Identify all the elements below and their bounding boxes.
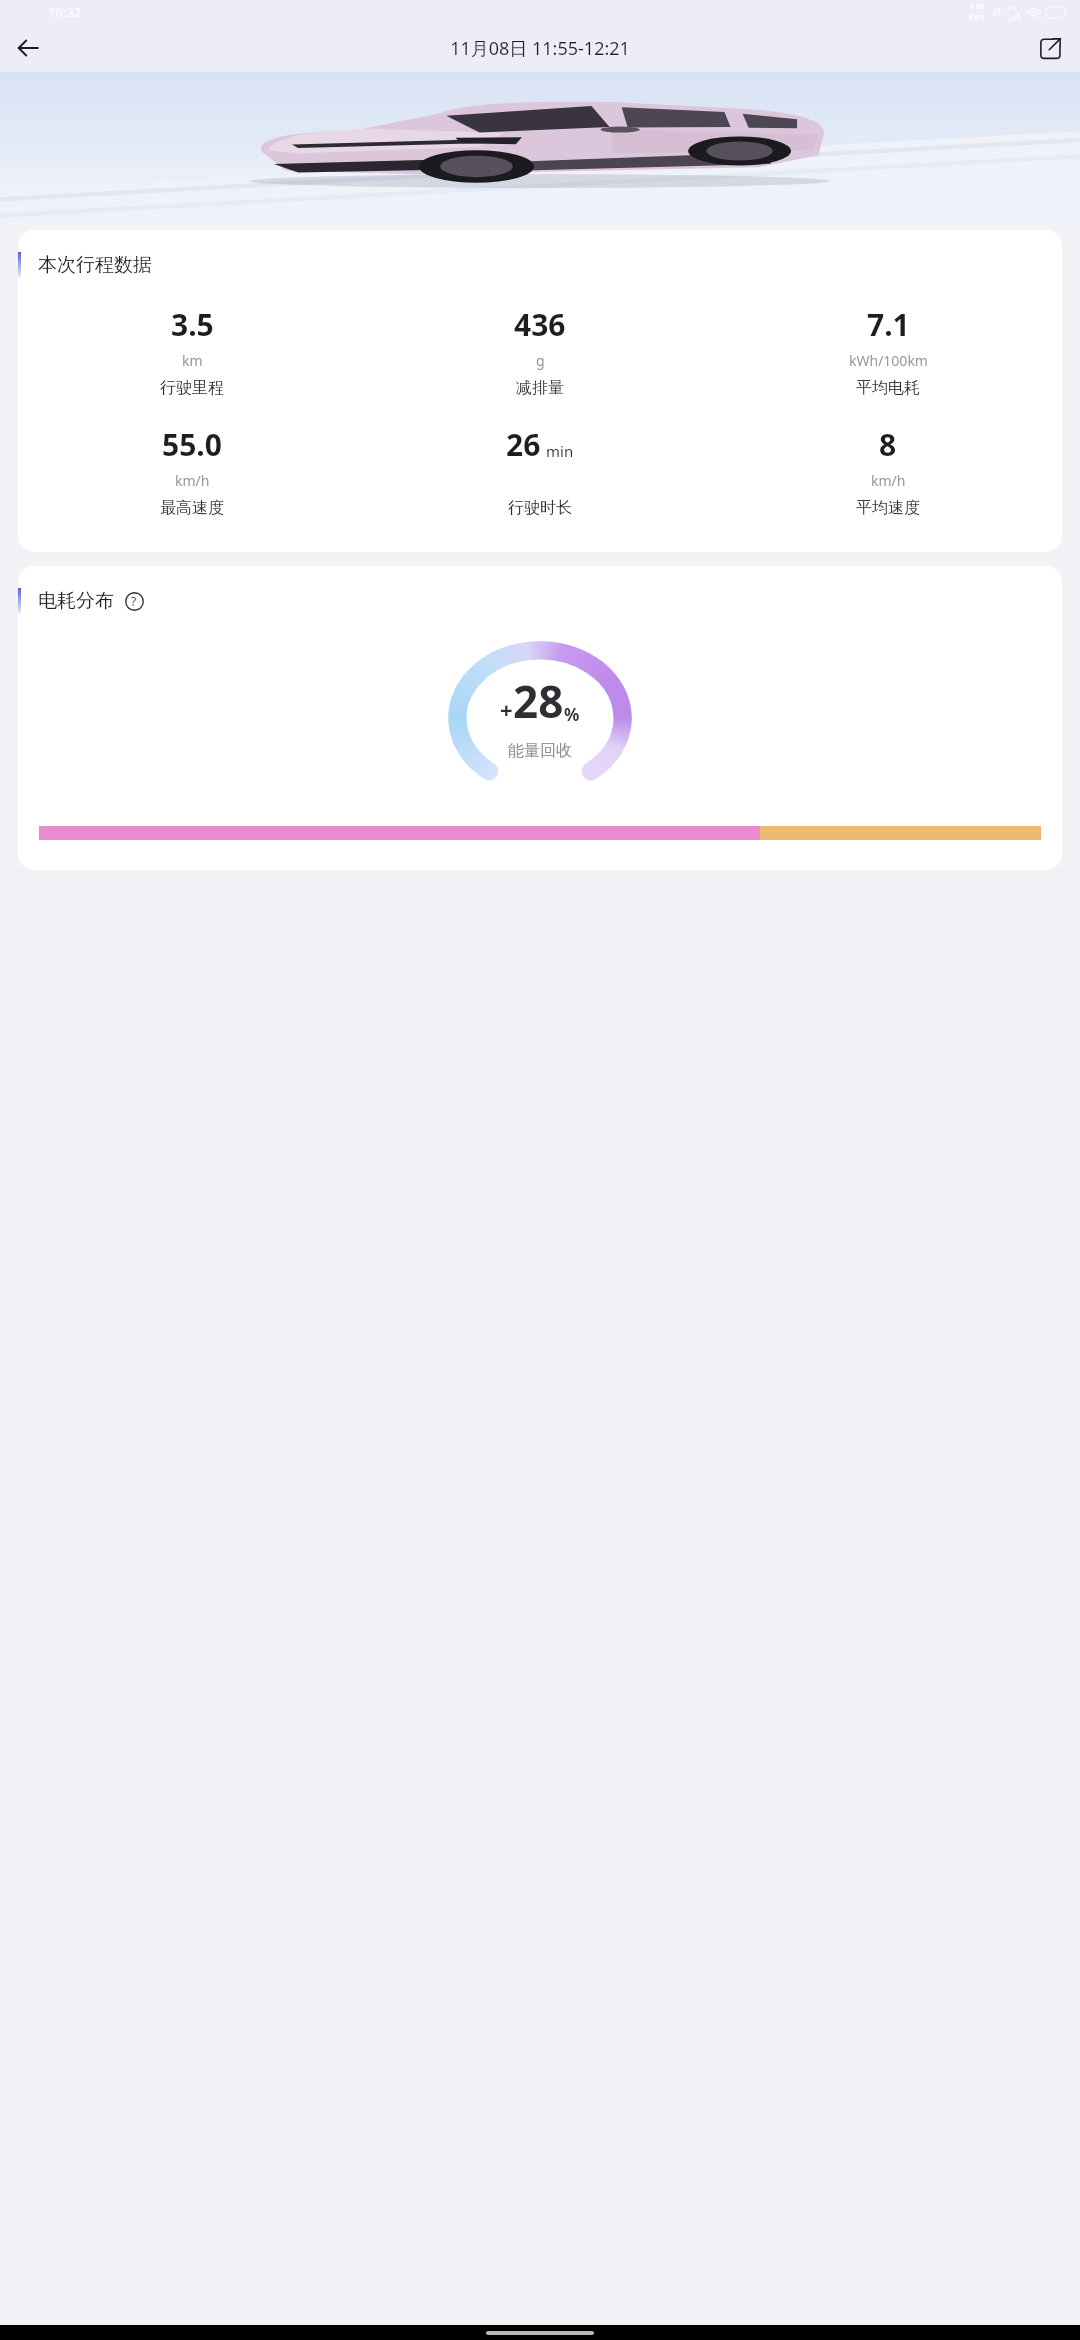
staticText: g <box>536 351 545 370</box>
staticText: 16:32 <box>48 3 82 21</box>
staticText: min <box>546 441 574 461</box>
staticText: + <box>500 694 513 724</box>
staticText: kWh/100km <box>849 351 928 370</box>
staticText: km <box>182 351 203 370</box>
staticText: 最高速度 <box>160 498 224 518</box>
staticText: km/h <box>871 471 906 490</box>
staticText: 55.0 <box>162 424 222 465</box>
staticText: 平均电耗 <box>856 378 920 398</box>
staticText: 8 <box>879 424 897 465</box>
staticText: 电耗分布 <box>38 589 114 613</box>
button[interactable]: Share <box>1026 24 1074 72</box>
staticText: 行驶里程 <box>160 378 224 398</box>
staticText: 行驶时长 <box>508 498 572 518</box>
button[interactable]: 本次行程数据 <box>18 230 1062 552</box>
staticText: 本次行程数据 <box>38 253 152 277</box>
staticText: HD <box>1008 4 1017 12</box>
staticText: 28 <box>513 671 564 731</box>
button[interactable]: 电耗分布 <box>18 566 1062 870</box>
staticText: 26 <box>506 424 541 465</box>
staticText: 能量回收 <box>508 741 572 761</box>
staticText: % <box>564 703 580 726</box>
staticText: 7.1 <box>867 304 910 345</box>
staticText: 0.00 <box>970 2 984 12</box>
staticText: KB/s <box>969 12 985 22</box>
button[interactable]: Back <box>4 24 52 72</box>
staticText: 减排量 <box>516 378 564 398</box>
staticText: 11月08日 11:55-12:21 <box>450 36 630 61</box>
staticText: 3.5 <box>171 304 214 345</box>
staticText: ? <box>131 593 137 609</box>
staticText: 平均速度 <box>856 498 920 518</box>
staticText: 436 <box>514 304 566 345</box>
button[interactable]: Help <box>123 590 145 612</box>
staticText: km/h <box>175 471 210 490</box>
